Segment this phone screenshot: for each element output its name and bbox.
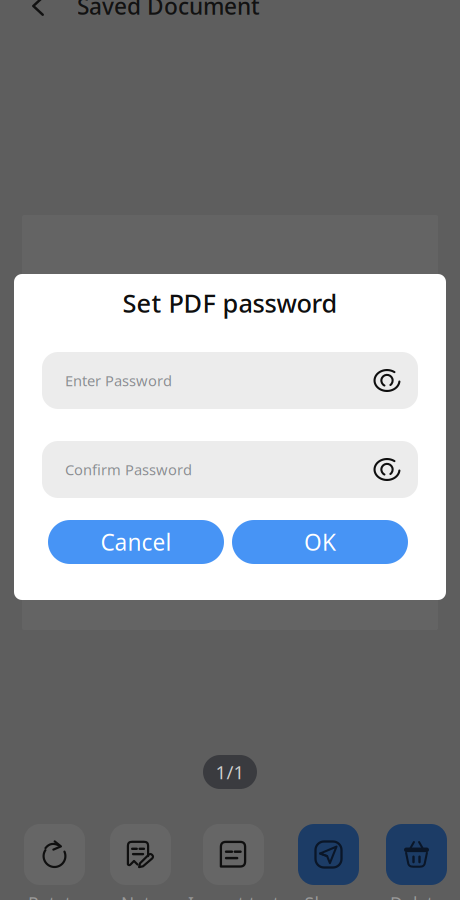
staticText: OK — [304, 527, 336, 557]
staticText: Cancel — [100, 527, 171, 557]
button[interactable]: Share — [278, 824, 378, 900]
button[interactable]: Note — [90, 824, 190, 900]
staticText: Enter Password — [65, 371, 172, 390]
staticText: Rotate — [28, 892, 81, 900]
button[interactable]: OK — [232, 520, 408, 564]
button[interactable]: Rotate — [4, 824, 104, 900]
button[interactable]: Import text — [183, 824, 283, 900]
button[interactable]: Delete — [366, 824, 460, 900]
staticText: Note — [121, 892, 160, 900]
button[interactable]: Show Confirm Password — [370, 452, 404, 486]
staticText: Import text — [188, 892, 279, 900]
staticText: Delete — [390, 892, 443, 900]
staticText: Saved Document — [77, 0, 260, 21]
staticText: 1/1 — [215, 760, 244, 784]
button[interactable]: Show Enter Password — [370, 363, 404, 397]
staticText: Set PDF password — [122, 286, 337, 320]
button[interactable]: Back — [21, 0, 55, 21]
staticText: Share — [304, 892, 352, 900]
button[interactable]: Cancel — [48, 520, 224, 564]
staticText: Confirm Password — [65, 460, 192, 479]
